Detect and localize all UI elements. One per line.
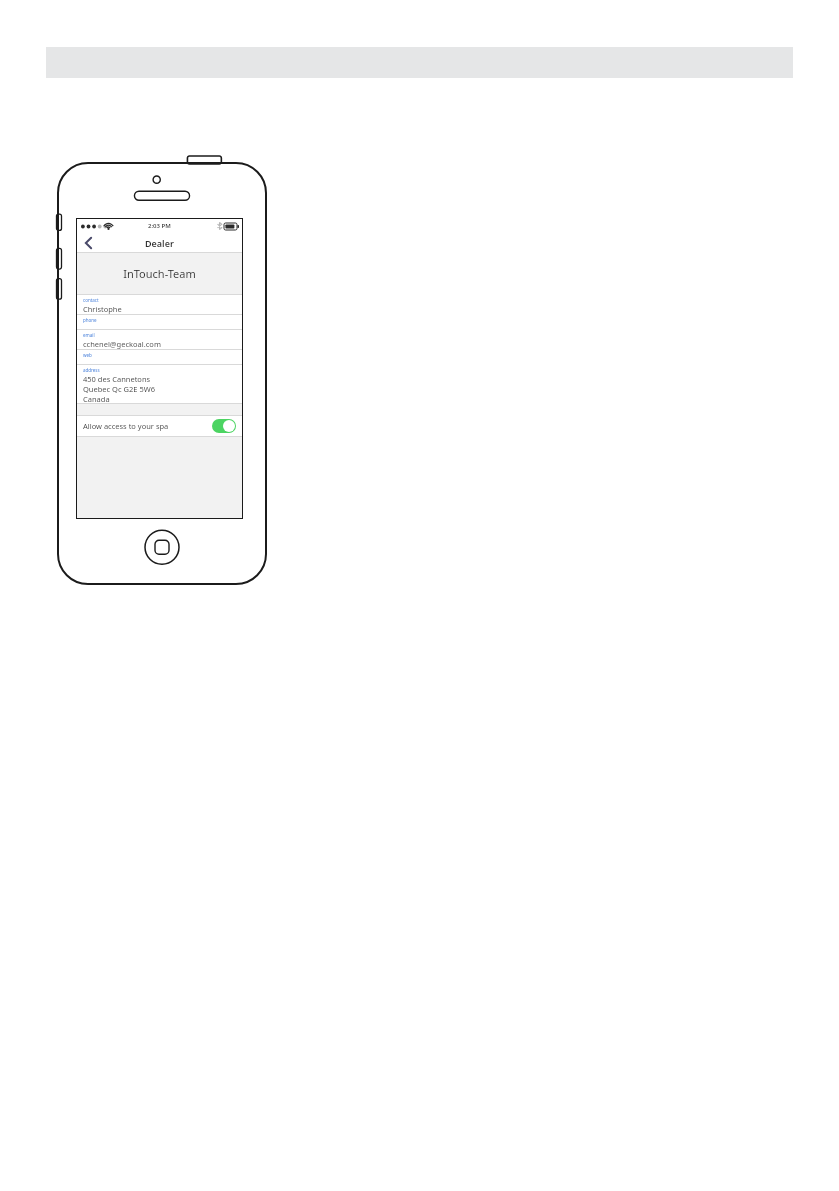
staticText: Dealer [145, 237, 174, 249]
staticText: Christophe [83, 304, 122, 314]
button[interactable]: Allow access to your spa [77, 416, 242, 436]
staticText: Canada [83, 394, 110, 403]
button[interactable]: Back [77, 232, 99, 253]
staticText: Allow access to your spa [83, 421, 169, 431]
button[interactable]: Allow access to your spa toggle [212, 419, 236, 433]
button[interactable]: web [77, 350, 242, 364]
staticText: cchenel@geckoal.com [83, 339, 161, 349]
staticText: web [83, 352, 92, 358]
staticText: contact [83, 297, 99, 303]
button[interactable]: phone [77, 315, 242, 329]
staticText: 2:03 PM [148, 222, 171, 230]
staticText: phone [83, 317, 97, 323]
staticText: InTouch-Team [123, 266, 196, 281]
staticText: address [83, 367, 100, 373]
staticText: Quebec Qc G2E 5W6 [83, 384, 155, 394]
staticText: email [83, 332, 95, 338]
button[interactable]: email [77, 330, 242, 349]
button[interactable]: address [77, 365, 242, 403]
staticText: 450 des Cannetons [83, 374, 151, 384]
button[interactable]: contact [77, 295, 242, 314]
